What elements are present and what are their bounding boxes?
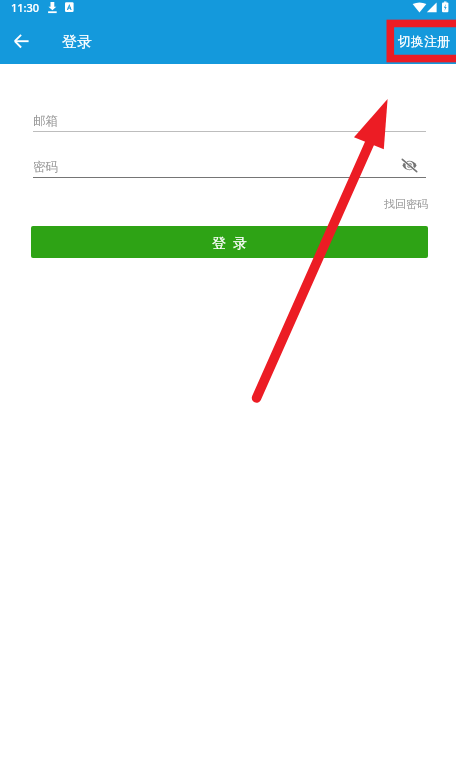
staticText: 邮箱	[33, 113, 58, 129]
button[interactable]: 密码	[33, 154, 426, 177]
staticText: 11:30	[11, 0, 40, 15]
button[interactable]: 登 录	[31, 226, 428, 258]
button[interactable]: 邮箱	[33, 108, 426, 131]
button[interactable]: Toggle password visibility	[396, 154, 426, 177]
staticText: 登 录	[212, 233, 248, 252]
button[interactable]: 切换注册	[398, 21, 456, 64]
staticText: 登录	[62, 33, 92, 52]
staticText: 密码	[33, 159, 58, 175]
staticText: 切换注册	[398, 33, 450, 49]
button[interactable]: 找回密码	[384, 196, 428, 210]
button[interactable]: Back	[0, 21, 43, 64]
